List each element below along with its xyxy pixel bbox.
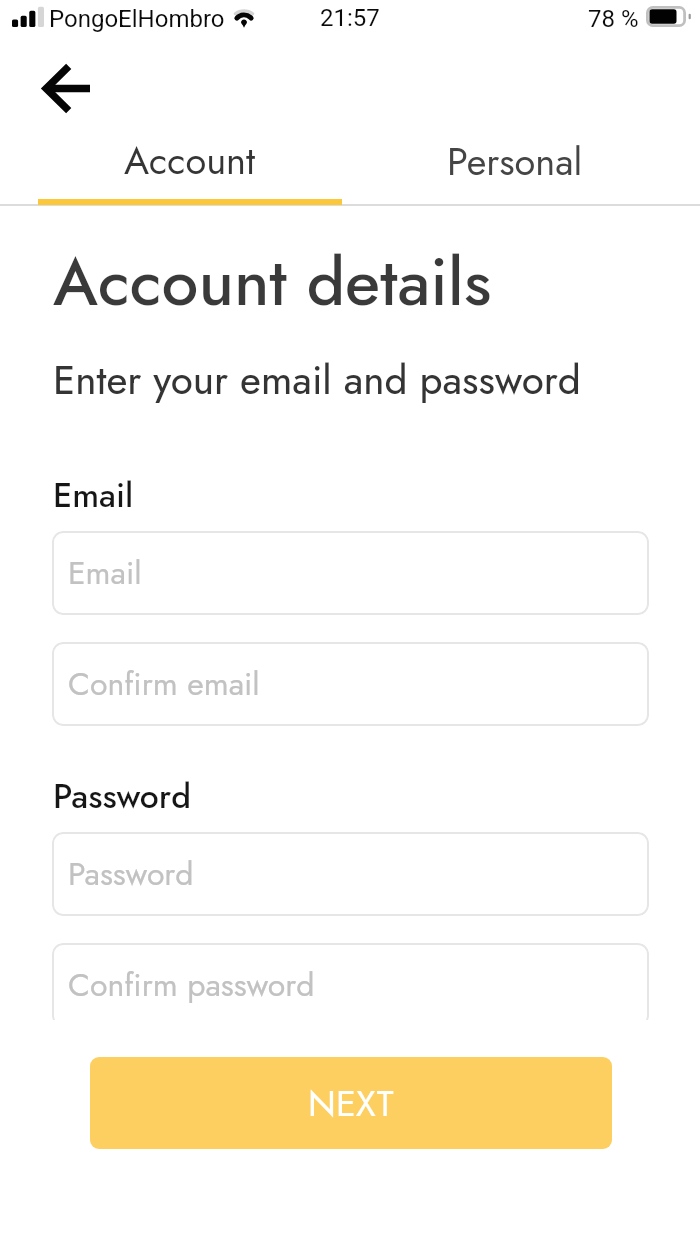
button[interactable]: NEXT xyxy=(90,1057,612,1149)
staticText: 21:57 xyxy=(320,4,380,32)
button[interactable]: Personal xyxy=(350,126,700,204)
staticText: Personal xyxy=(447,134,583,189)
staticText: NEXT xyxy=(308,1077,394,1129)
staticText: 78 % xyxy=(588,5,639,33)
staticText: Email xyxy=(68,550,142,596)
staticText: Account xyxy=(124,133,256,188)
staticText: Confirm password xyxy=(68,962,315,1008)
button[interactable]: Email xyxy=(52,531,649,615)
staticText: Enter your email and password xyxy=(53,351,581,409)
button[interactable]: Password xyxy=(52,832,649,916)
staticText: Password xyxy=(68,851,194,897)
button[interactable]: Account xyxy=(0,126,350,204)
staticText: Confirm email xyxy=(68,661,260,707)
staticText: Email xyxy=(53,471,134,520)
button[interactable]: Back xyxy=(24,54,108,122)
button[interactable]: Confirm email xyxy=(52,642,649,726)
staticText: Password xyxy=(53,772,191,821)
button[interactable]: Confirm password xyxy=(52,943,649,1027)
staticText: Account details xyxy=(53,234,492,329)
staticText: PongoElHombro xyxy=(49,5,225,33)
